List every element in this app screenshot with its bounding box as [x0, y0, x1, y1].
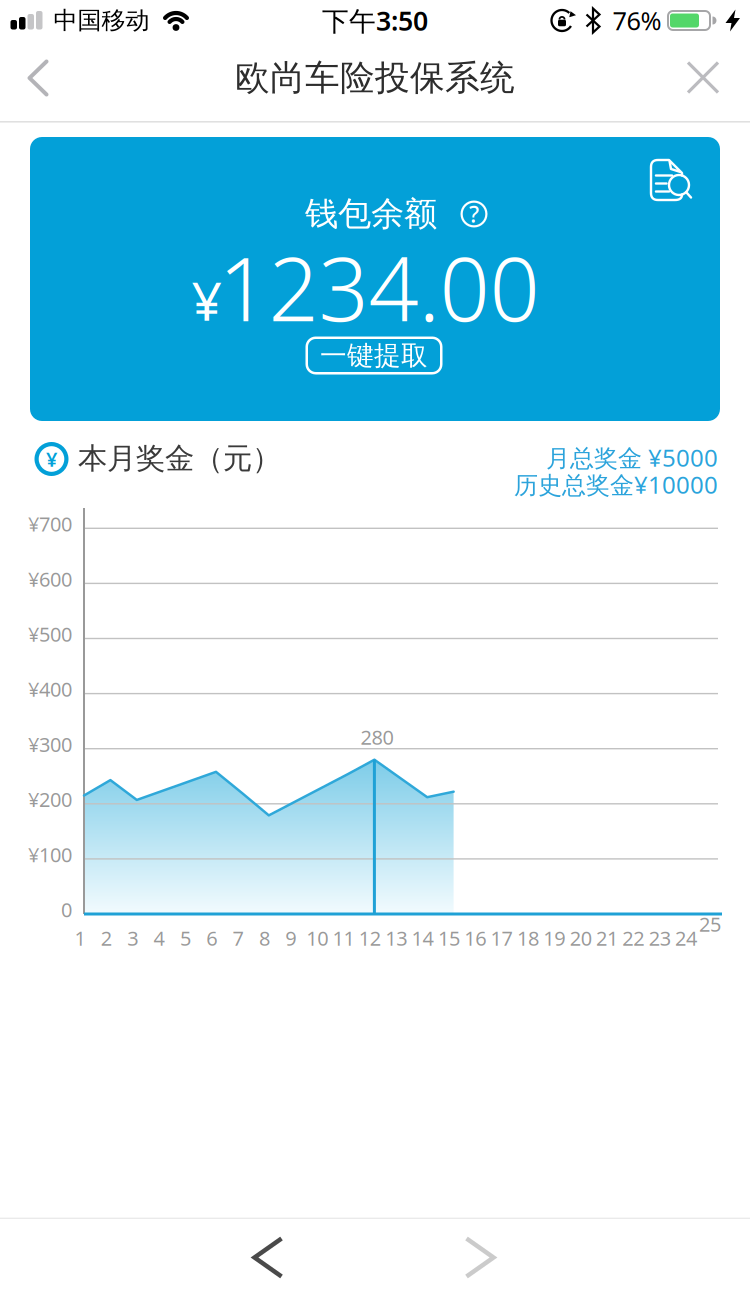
staticText: 8	[259, 925, 270, 951]
staticText: ¥500	[28, 621, 72, 647]
staticText: 本月奖金（元）	[78, 440, 281, 476]
staticText: 3	[127, 925, 138, 951]
staticText: ¥700	[28, 510, 72, 537]
staticText: ¥	[191, 265, 222, 335]
staticText: ¥	[46, 446, 57, 472]
button[interactable]: 一键提取	[305, 336, 442, 374]
staticText: 24	[675, 925, 697, 951]
staticText: 欧尚车险投保系统	[235, 57, 515, 99]
button[interactable]: 提现记录	[649, 158, 693, 202]
staticText: 12	[359, 925, 381, 951]
button[interactable]: 余额说明	[460, 200, 488, 228]
staticText: 历史总奖金¥10000	[514, 469, 718, 500]
staticText: ¥600	[28, 566, 72, 592]
staticText: 2	[101, 925, 112, 951]
staticText: 19	[543, 925, 565, 951]
staticText: 月总奖金 ¥5000	[546, 442, 718, 473]
staticText: 17	[491, 925, 513, 951]
staticText: 7	[233, 925, 244, 951]
staticText: ¥400	[28, 676, 72, 702]
staticText: 4	[154, 925, 165, 951]
button[interactable]: 返回	[28, 60, 48, 96]
button[interactable]: 关闭	[687, 61, 719, 93]
button[interactable]: 下一页	[465, 1237, 495, 1277]
staticText: 16	[464, 925, 486, 951]
staticText: 10	[306, 925, 328, 951]
staticText: 钱包余额	[305, 193, 437, 234]
staticText: 14	[412, 925, 434, 951]
staticText: 25	[699, 911, 721, 937]
staticText: 13	[385, 925, 407, 951]
staticText: 1234.00	[218, 229, 539, 345]
staticText: 11	[332, 925, 354, 951]
staticText: 21	[596, 925, 618, 951]
staticText: ?	[469, 199, 479, 229]
staticText: 23	[649, 925, 671, 951]
staticText: 中国移动	[53, 6, 149, 35]
staticText: 6	[206, 925, 217, 951]
staticText: 9	[285, 925, 296, 951]
staticText: ¥300	[28, 731, 72, 757]
staticText: 15	[438, 925, 460, 951]
staticText: 1	[74, 925, 85, 951]
staticText: 下午3:50	[322, 3, 428, 38]
button[interactable]: 上一页	[253, 1237, 283, 1277]
staticText: 280	[360, 724, 393, 750]
staticText: ¥200	[28, 786, 72, 813]
staticText: 20	[570, 925, 592, 951]
staticText: 5	[180, 925, 191, 951]
staticText: 0	[61, 896, 72, 923]
staticText: 18	[517, 925, 539, 951]
staticText: ¥100	[28, 841, 72, 868]
staticText: 22	[622, 925, 644, 951]
staticText: 一键提取	[320, 339, 428, 372]
staticText: 76%	[612, 4, 661, 37]
